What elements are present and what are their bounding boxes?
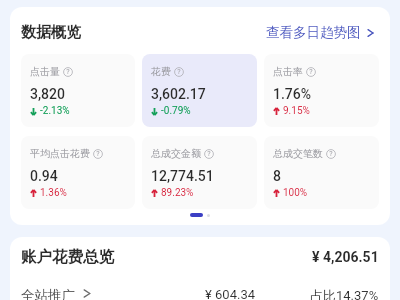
staticText: ¥ 604.34 [205,287,256,300]
staticText: 8 [273,168,281,184]
staticText: -2.13% [40,105,70,117]
staticText: 全站推广 [21,287,75,300]
staticText: ? [329,150,333,158]
staticText: 3,820 [30,86,65,102]
button[interactable]: 总成交笔数 [264,136,379,209]
staticText: 12,774.51 [151,168,214,184]
button[interactable]: 总成交金额 [142,136,257,209]
staticText: 查看多日趋势图 [266,24,361,41]
button[interactable]: 点击量 [21,54,135,127]
button[interactable]: 查看多日趋势图 [266,24,374,41]
staticText: 3,602.17 [151,86,206,102]
staticText: 9.15% [283,105,310,117]
staticText: 1.76% [273,86,312,102]
button[interactable]: 全站推广 [21,287,91,300]
staticText: 占比14.37% [310,287,379,300]
staticText: 89.23% [161,187,194,199]
staticText: ? [96,150,100,158]
staticText: 数据概览 [21,23,81,42]
staticText: 点击率 [273,65,303,78]
button[interactable]: 平均点击花费 [21,136,135,209]
staticText: 账户花费总览 [21,247,114,267]
staticText: 平均点击花费 [30,147,90,160]
staticText: 0.94 [30,168,58,184]
staticText: ? [207,150,211,158]
staticText: ? [177,68,181,76]
staticText: ¥ 4,206.51 [312,249,379,265]
button[interactable]: 花费 [142,54,257,127]
staticText: 1.36% [40,187,67,199]
button[interactable]: 点击率 [264,54,379,127]
staticText: -0.79% [161,105,191,117]
staticText: ? [309,68,313,76]
staticText: 花费 [151,65,171,78]
staticText: 100% [283,187,308,199]
staticText: 点击量 [30,65,60,78]
staticText: 总成交笔数 [273,147,323,160]
staticText: ? [66,68,70,76]
staticText: 总成交金额 [151,147,201,160]
